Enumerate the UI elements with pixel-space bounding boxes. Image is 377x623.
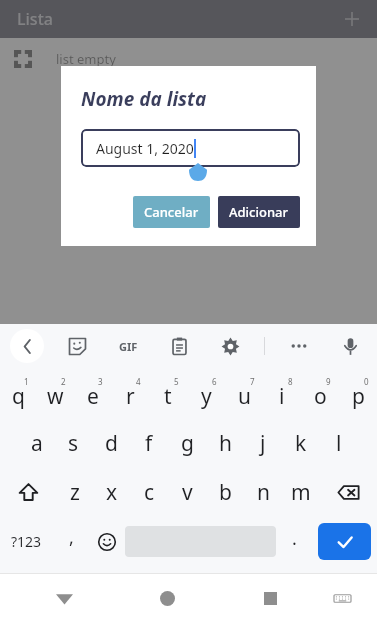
staticText: Lista bbox=[17, 8, 53, 30]
button[interactable]: z bbox=[56, 468, 93, 517]
staticText: Adicionar bbox=[229, 203, 289, 221]
button[interactable]: h bbox=[206, 419, 244, 468]
button[interactable]: . bbox=[276, 517, 312, 566]
staticText: 3 bbox=[98, 376, 103, 387]
button[interactable]: Recent apps bbox=[248, 576, 292, 620]
button[interactable]: f bbox=[130, 419, 168, 468]
other: Text cursor handle bbox=[189, 163, 207, 181]
button[interactable]: c bbox=[130, 468, 168, 517]
staticText: f bbox=[145, 429, 153, 458]
button[interactable]: Shift bbox=[0, 468, 56, 517]
staticText: o bbox=[314, 382, 327, 411]
button[interactable]: b bbox=[206, 468, 244, 517]
button[interactable]: j bbox=[244, 419, 282, 468]
button[interactable]: 3 bbox=[74, 370, 111, 419]
staticText: p bbox=[352, 382, 365, 411]
staticText: 2 bbox=[61, 376, 66, 387]
staticText: , bbox=[69, 525, 74, 550]
staticText: 8 bbox=[288, 376, 293, 387]
button[interactable]: x bbox=[93, 468, 130, 517]
button[interactable]: v bbox=[168, 468, 206, 517]
button[interactable]: Add list bbox=[335, 2, 369, 36]
button[interactable]: 4 bbox=[111, 370, 149, 419]
button[interactable]: Backspace bbox=[320, 468, 377, 517]
staticText: v bbox=[182, 478, 193, 507]
button[interactable]: d bbox=[92, 419, 130, 468]
button[interactable]: GIF bbox=[111, 329, 145, 363]
staticText: s bbox=[68, 429, 79, 458]
staticText: e bbox=[87, 382, 99, 411]
staticText: w bbox=[47, 382, 64, 411]
staticText: h bbox=[219, 429, 232, 458]
button[interactable]: August 1, 2020 bbox=[81, 129, 300, 167]
staticText: l bbox=[336, 429, 342, 458]
button[interactable]: Voice input bbox=[333, 329, 367, 363]
staticText: q bbox=[12, 382, 25, 411]
button[interactable]: Clipboard bbox=[162, 329, 196, 363]
button[interactable]: Switch keyboard bbox=[322, 578, 362, 618]
button[interactable]: 7 bbox=[225, 370, 263, 419]
button[interactable]: k bbox=[282, 419, 320, 468]
staticText: Nome da lista bbox=[81, 86, 207, 112]
staticText: b bbox=[219, 478, 232, 507]
staticText: 0 bbox=[364, 376, 369, 387]
staticText: k bbox=[295, 429, 307, 458]
staticText: j bbox=[260, 429, 266, 458]
staticText: c bbox=[144, 478, 155, 507]
staticText: z bbox=[70, 478, 80, 507]
button[interactable]: 9 bbox=[301, 370, 339, 419]
staticText: list empty bbox=[56, 50, 116, 68]
button[interactable]: Back bbox=[10, 329, 44, 363]
staticText: 1 bbox=[24, 376, 29, 387]
button[interactable]: Stickers bbox=[60, 329, 94, 363]
button[interactable]: m bbox=[282, 468, 320, 517]
staticText: r bbox=[126, 382, 135, 411]
staticText: 9 bbox=[326, 376, 331, 387]
staticText: 6 bbox=[212, 376, 217, 387]
button[interactable]: 6 bbox=[187, 370, 225, 419]
staticText: Cancelar bbox=[144, 203, 199, 221]
staticText: 5 bbox=[174, 376, 179, 387]
button[interactable]: g bbox=[168, 419, 206, 468]
staticText: u bbox=[238, 382, 251, 411]
button[interactable]: Adicionar bbox=[218, 196, 300, 228]
button[interactable]: Cancelar bbox=[133, 196, 210, 228]
button[interactable]: 0 bbox=[339, 370, 377, 419]
button[interactable]: 2 bbox=[37, 370, 74, 419]
staticText: m bbox=[291, 478, 311, 507]
button[interactable]: Settings bbox=[213, 329, 247, 363]
button[interactable]: More options bbox=[282, 329, 316, 363]
button[interactable]: a bbox=[18, 419, 55, 468]
button[interactable]: n bbox=[244, 468, 282, 517]
staticText: n bbox=[257, 478, 270, 507]
staticText: a bbox=[31, 429, 43, 458]
staticText: i bbox=[279, 382, 285, 411]
button[interactable]: 5 bbox=[149, 370, 187, 419]
button[interactable]: l bbox=[320, 419, 358, 468]
button[interactable]: 1 bbox=[0, 370, 37, 419]
button[interactable]: , bbox=[53, 517, 89, 566]
button[interactable]: 8 bbox=[263, 370, 301, 419]
staticText: . bbox=[292, 526, 297, 551]
button[interactable]: Emoji bbox=[89, 517, 125, 566]
staticText: GIF bbox=[119, 339, 138, 354]
button[interactable]: Enter bbox=[318, 523, 371, 560]
button[interactable]: ?123 bbox=[0, 517, 53, 566]
staticText: x bbox=[106, 478, 118, 507]
staticText: 4 bbox=[136, 376, 141, 387]
staticText: August 1, 2020 bbox=[96, 139, 194, 158]
staticText: t bbox=[164, 382, 172, 411]
staticText: y bbox=[201, 382, 212, 411]
staticText: g bbox=[181, 429, 194, 458]
button[interactable]: Back bbox=[42, 576, 86, 620]
staticText: d bbox=[105, 429, 118, 458]
button[interactable]: Home bbox=[145, 576, 189, 620]
button[interactable]: s bbox=[55, 419, 92, 468]
staticText: ?123 bbox=[11, 532, 42, 551]
staticText: 7 bbox=[250, 376, 255, 387]
